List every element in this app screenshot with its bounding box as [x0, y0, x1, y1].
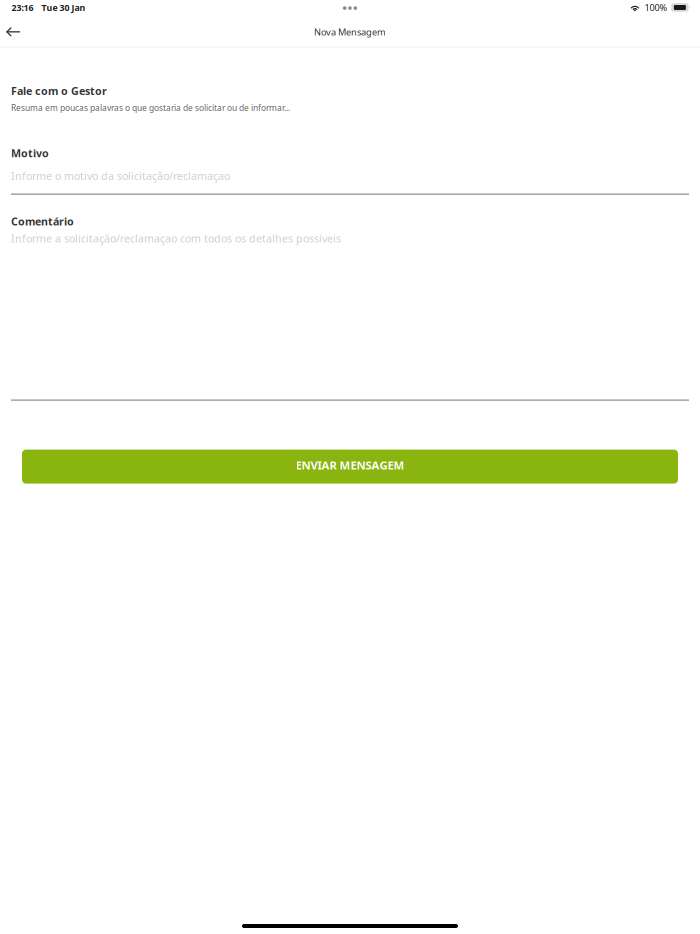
staticText: Motivo — [11, 146, 49, 160]
staticText: 23:16 — [12, 1, 34, 13]
staticText: Tue 30 Jan — [42, 1, 86, 13]
staticText: Nova Mensagem — [314, 26, 386, 38]
button[interactable]: Back — [2, 19, 24, 45]
staticText: 100% — [644, 1, 667, 14]
staticText: Fale com o Gestor — [11, 83, 107, 98]
staticText: ENVIAR MENSAGEM — [295, 457, 404, 473]
button[interactable]: ENVIAR MENSAGEM — [22, 450, 678, 484]
staticText: Resuma em poucas palavras o que gostaria… — [11, 102, 290, 113]
button[interactable]: Informe o motivo da solicitação/reclamaç… — [11, 160, 689, 195]
staticText: Comentário — [11, 214, 74, 229]
staticText: Informe o motivo da solicitação/reclamaç… — [11, 168, 230, 183]
button[interactable]: Informe a solicitação/reclamaçao com tod… — [11, 229, 689, 401]
staticText: Informe a solicitação/reclamaçao com tod… — [11, 231, 341, 246]
